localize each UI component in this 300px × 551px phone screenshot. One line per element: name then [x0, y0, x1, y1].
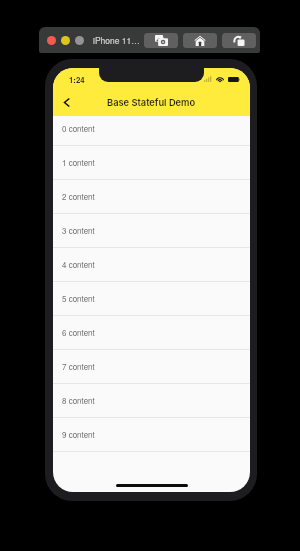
- button[interactable]: Zoom window: [75, 36, 84, 45]
- button[interactable]: Rotate: [222, 33, 256, 48]
- staticText: 9 content: [62, 429, 95, 440]
- staticText: 8 content: [62, 395, 95, 406]
- staticText: 4 content: [62, 259, 95, 270]
- button[interactable]: 0 content: [53, 116, 250, 146]
- button[interactable]: Home: [183, 33, 217, 48]
- staticText: 2 content: [62, 191, 95, 202]
- button[interactable]: 6 content: [53, 316, 250, 350]
- staticText: 3 content: [62, 225, 95, 236]
- staticText: 1 content: [62, 157, 95, 168]
- staticText: 5 content: [62, 293, 95, 304]
- button[interactable]: 7 content: [53, 350, 250, 384]
- staticText: 7 content: [62, 361, 95, 372]
- staticText: iPhone 11…: [93, 34, 140, 46]
- staticText: 6 content: [62, 327, 95, 338]
- button[interactable]: Take screenshot: [144, 33, 178, 48]
- button[interactable]: Back: [53, 88, 79, 116]
- button[interactable]: 5 content: [53, 282, 250, 316]
- button[interactable]: Minimize window: [61, 36, 70, 45]
- button[interactable]: 3 content: [53, 214, 250, 248]
- button[interactable]: 2 content: [53, 180, 250, 214]
- button[interactable]: Close window: [47, 36, 56, 45]
- staticText: 1:24: [69, 74, 85, 85]
- button[interactable]: 1 content: [53, 146, 250, 180]
- staticText: Base Stateful Demo: [107, 97, 196, 108]
- staticText: 0 content: [62, 123, 95, 134]
- button[interactable]: 9 content: [53, 418, 250, 452]
- button[interactable]: 4 content: [53, 248, 250, 282]
- button[interactable]: 8 content: [53, 384, 250, 418]
